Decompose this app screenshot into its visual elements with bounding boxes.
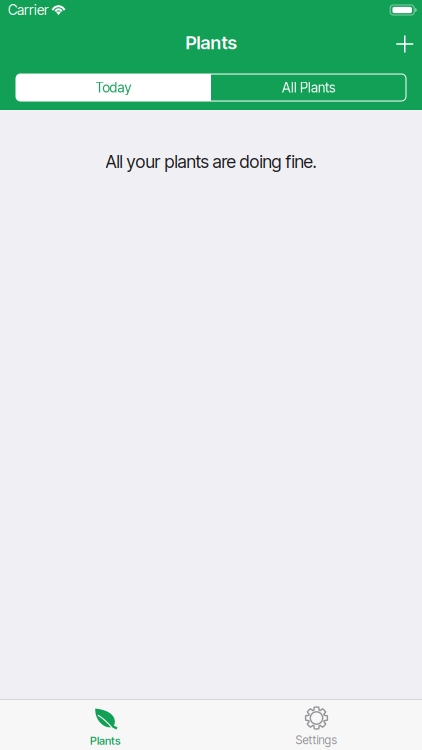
button[interactable]: Add plant: [387, 20, 422, 64]
staticText: Carrier: [8, 2, 49, 18]
button[interactable]: Today: [16, 74, 211, 101]
staticText: Plants: [90, 734, 121, 748]
button[interactable]: All Plants: [211, 74, 406, 101]
staticText: Plants: [185, 31, 236, 54]
staticText: All Plants: [282, 79, 335, 96]
button[interactable]: Plants: [0, 700, 211, 750]
staticText: All your plants are doing fine.: [105, 151, 316, 172]
staticText: Today: [95, 79, 131, 96]
staticText: Settings: [295, 733, 337, 747]
button[interactable]: Settings: [211, 700, 422, 750]
